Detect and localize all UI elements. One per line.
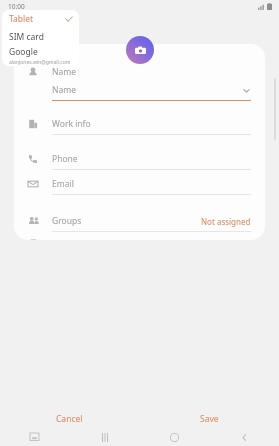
staticText: Cancel	[56, 413, 83, 425]
staticText: Save	[200, 413, 219, 425]
staticText: SIM card	[9, 31, 44, 43]
button[interactable]: Home	[139, 429, 209, 446]
button[interactable]: Add photo	[126, 36, 154, 64]
button[interactable]: Keyboard	[0, 429, 69, 446]
staticText: Phone	[52, 153, 78, 165]
button[interactable]: Phone	[14, 149, 265, 169]
button[interactable]: Back	[209, 429, 279, 446]
button[interactable]: Google	[2, 45, 79, 66]
staticText: 10:00	[8, 2, 25, 11]
staticText: alanjones.win@gmail.com	[9, 59, 71, 66]
staticText: Name	[52, 84, 242, 96]
button[interactable]: SIM card	[2, 28, 79, 45]
staticText: Work info	[52, 118, 91, 130]
staticText: Groups	[52, 215, 201, 227]
button[interactable]: Recents	[69, 429, 139, 446]
button[interactable]: Tablet	[2, 10, 79, 28]
staticText: Email	[52, 178, 74, 190]
button[interactable]: Name	[52, 80, 251, 100]
button[interactable]: Email	[14, 174, 265, 194]
button[interactable]: Cancel	[0, 409, 139, 429]
staticText: Google	[9, 46, 38, 58]
button[interactable]: Work info	[14, 114, 265, 134]
staticText: Not assigned	[201, 216, 251, 227]
staticText: Tablet	[9, 13, 65, 25]
button[interactable]: Groups	[14, 211, 265, 231]
button[interactable]: Save	[139, 409, 279, 429]
button[interactable]: Name	[14, 64, 265, 80]
staticText: Name	[52, 66, 76, 78]
